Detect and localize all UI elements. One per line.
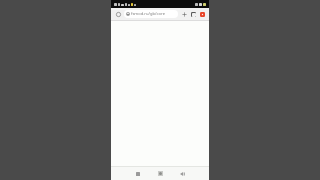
- button[interactable]: Tabs: [189, 10, 197, 18]
- button[interactable]: Home: [114, 10, 122, 18]
- button[interactable]: Back: [171, 167, 193, 180]
- button[interactable]: fsmod.ru/gb/core: [124, 10, 178, 18]
- button[interactable]: New tab: [180, 10, 188, 18]
- button[interactable]: Menu: [198, 10, 206, 18]
- button[interactable]: Recents: [127, 167, 149, 180]
- staticText: fsmod.ru/gb/core: [131, 11, 165, 17]
- button[interactable]: Home: [149, 167, 171, 180]
